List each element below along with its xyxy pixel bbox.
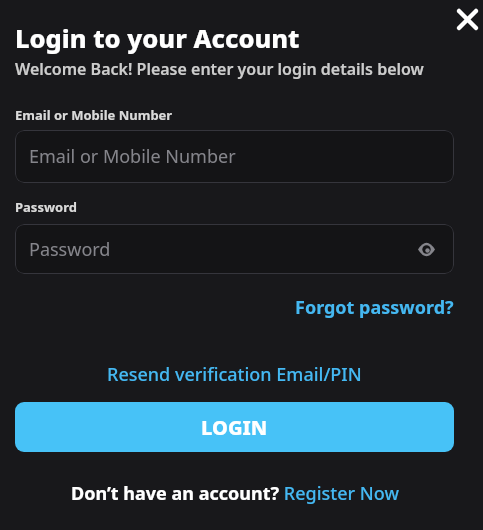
staticText: Login to your Account — [15, 21, 300, 56]
button[interactable]: LOGIN — [15, 402, 454, 452]
button[interactable]: Email or Mobile Number — [15, 130, 454, 183]
staticText: Email or Mobile Number — [15, 106, 173, 124]
staticText: Password — [29, 237, 111, 262]
staticText: LOGIN — [201, 414, 268, 441]
button[interactable]: Forgot password? — [295, 295, 454, 320]
button[interactable]: Don’t have an account? Register Now — [71, 481, 399, 506]
button[interactable] — [454, 6, 480, 32]
staticText: Welcome Back! Please enter your login de… — [15, 58, 424, 80]
button[interactable]: Resend verification Email/PIN — [107, 362, 362, 387]
staticText: Password — [15, 198, 77, 216]
staticText: Email or Mobile Number — [29, 144, 236, 169]
button[interactable]: Password — [15, 224, 454, 274]
